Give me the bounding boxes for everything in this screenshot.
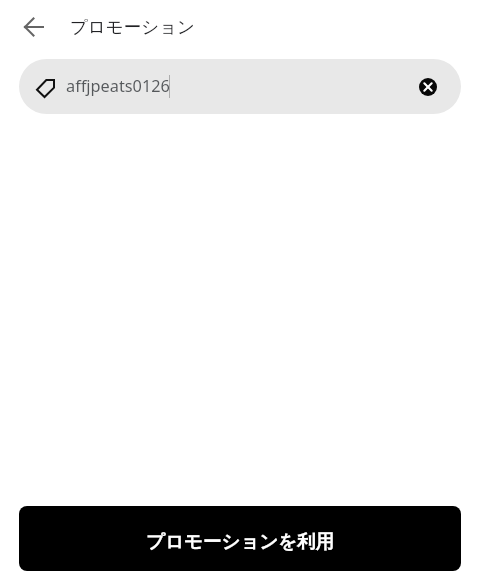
button[interactable]: Navigate up xyxy=(10,3,58,51)
button[interactable]: プロモーションを利用 xyxy=(19,506,461,571)
staticText: affjpeats0126 xyxy=(66,75,170,97)
button[interactable]: Clear promotion code xyxy=(410,69,446,105)
staticText: プロモーションを利用 xyxy=(146,530,335,553)
button[interactable]: affjpeats0126 xyxy=(19,59,461,114)
staticText: プロモーション xyxy=(70,16,195,38)
